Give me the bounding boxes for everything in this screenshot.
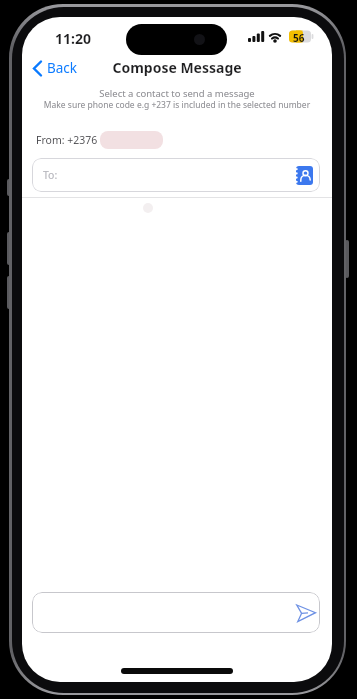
staticText: Compose Message xyxy=(22,58,332,77)
staticText: To: xyxy=(43,168,58,182)
button[interactable] xyxy=(32,592,320,633)
staticText: 11:20 xyxy=(55,29,91,48)
staticText: Make sure phone code e.g +237 is include… xyxy=(22,99,332,111)
staticText: 56 xyxy=(293,31,305,45)
staticText: From: +2376 xyxy=(36,133,98,147)
staticText: Back xyxy=(47,59,78,77)
button[interactable] xyxy=(296,166,313,185)
staticText: Select a contact to send a message xyxy=(22,87,332,100)
button[interactable]: To: xyxy=(32,158,320,192)
button[interactable]: Back xyxy=(30,58,100,78)
